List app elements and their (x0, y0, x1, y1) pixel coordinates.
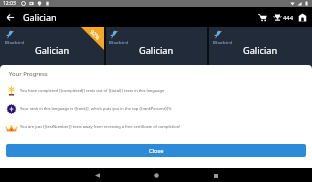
staticText: Bluebird (5, 40, 25, 46)
staticText: Bluebird (213, 40, 233, 46)
button[interactable]: Back (91, 169, 104, 182)
staticText: Galician (35, 44, 70, 57)
button[interactable]: Bluebird (208, 27, 312, 65)
staticText: Your rank in this language is {{rank}}, … (20, 106, 172, 111)
staticText: Close (149, 147, 164, 155)
button[interactable]: Close (6, 144, 306, 157)
button[interactable]: Recent apps (209, 169, 222, 182)
button[interactable]: Points (272, 10, 294, 25)
staticText: Galician (23, 11, 57, 23)
staticText: 444 (283, 14, 293, 22)
button[interactable]: Bluebird (0, 27, 104, 65)
staticText: You have completed {{completed}} tests o… (20, 88, 165, 93)
button[interactable]: Bluebird (104, 27, 208, 65)
button[interactable]: Home (150, 169, 163, 182)
button[interactable]: Store (294, 9, 310, 25)
staticText: Galician (243, 44, 278, 57)
staticText: Galician (139, 44, 174, 57)
staticText: Bluebird (109, 40, 129, 46)
button[interactable]: Shopping cart (253, 8, 271, 26)
staticText: 92% (89, 28, 102, 41)
staticText: You are just {{testNumber}} tests away f… (20, 124, 181, 129)
staticText: Your Progress (9, 70, 48, 78)
button[interactable]: Back (0, 7, 20, 27)
staticText: 12:03 (3, 0, 16, 7)
